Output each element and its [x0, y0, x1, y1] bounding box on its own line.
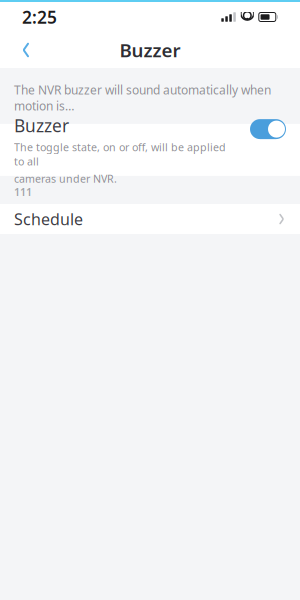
- staticText: Buzzer: [14, 114, 69, 137]
- staticText: Buzzer: [119, 38, 180, 62]
- staticText: The toggle state, on or off, will be app…: [14, 140, 226, 168]
- button[interactable]: Back: [6, 32, 46, 68]
- button[interactable]: Buzzer toggle, on: [250, 119, 286, 139]
- button[interactable]: Schedule: [0, 204, 300, 234]
- staticText: Schedule: [14, 208, 83, 230]
- staticText: 2:25: [22, 5, 57, 28]
- staticText: cameras under NVR.: [14, 171, 117, 186]
- staticText: 111: [14, 185, 32, 199]
- staticText: The NVR buzzer will sound automatically …: [14, 82, 271, 114]
